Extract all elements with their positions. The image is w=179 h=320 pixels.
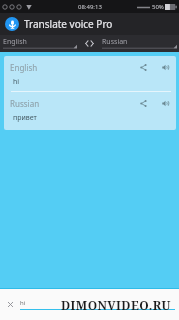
staticText: привет (13, 113, 37, 123)
button[interactable]: Russian (99, 35, 179, 52)
button[interactable]: Speak Russian text (158, 96, 172, 110)
button[interactable]: Speak English text (158, 60, 172, 74)
button[interactable]: Clear text (4, 298, 17, 311)
staticText: English (10, 62, 38, 73)
button[interactable]: Share English text (136, 60, 150, 74)
staticText: hi (13, 77, 20, 87)
button[interactable]: hi (20, 299, 175, 310)
staticText: 08:49:13 (78, 3, 102, 11)
staticText: English (3, 37, 27, 47)
button[interactable]: Swap languages (79, 35, 99, 52)
staticText: DIMONVIDEO.RU (61, 297, 171, 313)
button[interactable]: English (0, 35, 79, 52)
staticText: Translate voice Pro (24, 17, 113, 31)
staticText: 50% (152, 3, 164, 11)
staticText: Russian (102, 37, 128, 47)
staticText: Russian (10, 98, 40, 109)
staticText: hi (20, 299, 26, 307)
button[interactable]: Share Russian text (136, 96, 150, 110)
